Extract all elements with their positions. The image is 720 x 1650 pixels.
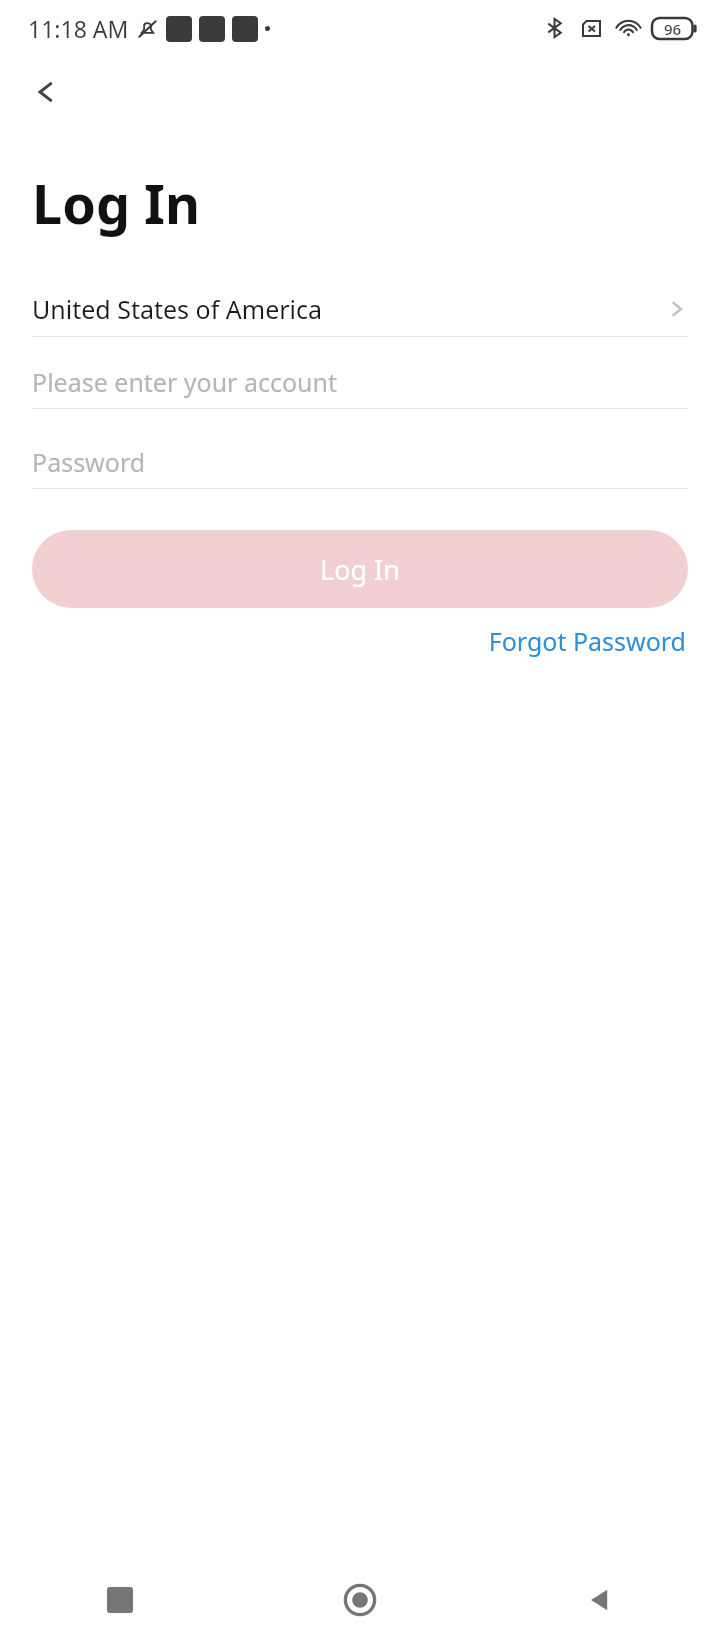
button[interactable]: Forgot Password	[486, 616, 688, 666]
staticText: Log In	[320, 551, 400, 588]
staticText: Please enter your account	[32, 365, 338, 399]
button[interactable]: United States of America	[32, 282, 688, 336]
staticText: Log In	[32, 166, 201, 240]
staticText: United States of America	[32, 292, 666, 326]
button[interactable]: Recent apps	[0, 1550, 240, 1650]
button[interactable]: Log In	[32, 530, 688, 608]
staticText: Password	[32, 445, 146, 479]
staticText: 96	[664, 19, 682, 39]
staticText: 11:18 AM	[28, 13, 129, 44]
button[interactable]: Back	[18, 64, 74, 120]
button[interactable]: Please enter your account	[32, 356, 688, 408]
button[interactable]: Back	[480, 1550, 720, 1650]
staticText: Forgot Password	[488, 624, 686, 658]
button[interactable]: Password	[32, 436, 688, 488]
button[interactable]: Home	[240, 1550, 480, 1650]
